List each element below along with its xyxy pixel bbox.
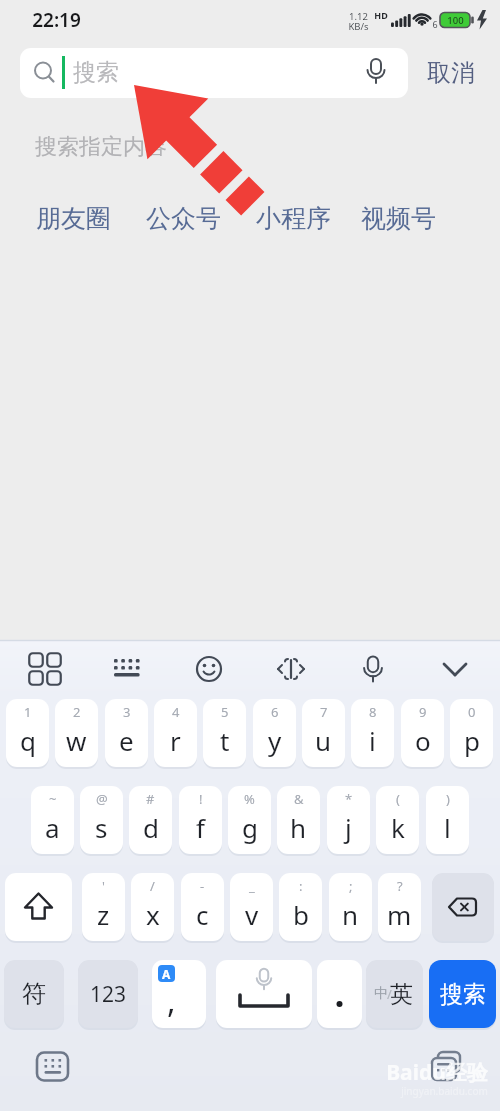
button[interactable]: ! <box>179 786 222 854</box>
button[interactable]: ( <box>376 786 419 854</box>
button[interactable]: # <box>129 786 172 854</box>
staticText: ! <box>199 790 203 808</box>
staticText: y <box>268 723 282 758</box>
staticText: 中 <box>374 985 388 1003</box>
button[interactable]: : <box>279 873 322 941</box>
button[interactable]: ? <box>378 873 421 941</box>
button[interactable] <box>317 960 362 1028</box>
button[interactable]: 符 <box>4 960 64 1028</box>
button[interactable]: 8 <box>351 699 394 767</box>
button[interactable] <box>424 645 486 693</box>
button[interactable]: 朋友圈 <box>35 203 111 233</box>
button[interactable]: 6 <box>253 699 296 767</box>
button[interactable] <box>432 873 494 941</box>
staticText: ' <box>102 877 105 895</box>
button[interactable]: 1 <box>6 699 49 767</box>
staticText: A <box>162 966 171 982</box>
button[interactable]: 2 <box>55 699 98 767</box>
staticText: 8 <box>369 703 377 721</box>
staticText: 2 <box>73 703 81 721</box>
staticText: : <box>299 877 303 895</box>
staticText: s <box>95 810 108 845</box>
button[interactable]: 123 <box>78 960 138 1028</box>
button[interactable] <box>216 960 312 1028</box>
button[interactable]: 4 <box>154 699 197 767</box>
button[interactable]: 7 <box>302 699 345 767</box>
staticText: / <box>150 877 155 895</box>
staticText: 0 <box>468 703 476 721</box>
button[interactable]: @ <box>80 786 123 854</box>
staticText: u <box>315 723 332 758</box>
staticText: # <box>146 790 155 808</box>
button[interactable]: 5 <box>203 699 246 767</box>
staticText: 6 <box>432 18 438 30</box>
staticText: , <box>167 979 176 1023</box>
staticText: 搜索指定内容 <box>35 133 167 161</box>
staticText: - <box>200 877 205 895</box>
button[interactable]: 0 <box>450 699 493 767</box>
button[interactable]: * <box>327 786 370 854</box>
staticText: j <box>345 810 352 845</box>
staticText: _ <box>249 877 255 895</box>
staticText: r <box>170 723 181 758</box>
button[interactable]: 取消 <box>420 52 482 94</box>
staticText: c <box>196 897 209 932</box>
button[interactable]: 搜索 <box>429 960 496 1028</box>
staticText: 符 <box>22 979 46 1009</box>
staticText: 100 <box>447 14 464 27</box>
button[interactable]: ; <box>329 873 372 941</box>
staticText: Baidu经验 <box>386 1058 488 1086</box>
button[interactable] <box>423 1045 468 1089</box>
button[interactable] <box>30 1045 75 1089</box>
staticText: a <box>45 810 60 845</box>
button[interactable] <box>342 645 404 693</box>
staticText: n <box>342 897 359 932</box>
button[interactable]: 视频号 <box>360 203 436 233</box>
button[interactable] <box>5 873 72 941</box>
staticText: ; <box>349 877 353 895</box>
staticText: 英 <box>390 980 413 1009</box>
button[interactable]: / <box>131 873 174 941</box>
staticText: % <box>244 790 255 808</box>
staticText: / <box>387 985 392 1003</box>
staticText: h <box>290 810 307 845</box>
button[interactable]: 公众号 <box>145 203 221 233</box>
staticText: d <box>143 810 159 845</box>
staticText: 朋友圈 <box>36 203 111 233</box>
button[interactable] <box>96 645 158 693</box>
staticText: * <box>345 790 353 808</box>
staticText: ? <box>397 877 403 895</box>
button[interactable]: 小程序 <box>255 203 331 233</box>
button[interactable] <box>260 645 322 693</box>
staticText: k <box>391 810 405 845</box>
button[interactable]: % <box>228 786 271 854</box>
button[interactable]: ~ <box>31 786 74 854</box>
staticText: w <box>66 723 87 758</box>
button[interactable]: ' <box>82 873 125 941</box>
staticText: i <box>369 723 376 758</box>
button[interactable]: A <box>152 960 206 1028</box>
staticText: 5 <box>221 703 229 721</box>
staticText: 6 <box>271 703 279 721</box>
button[interactable]: 3 <box>105 699 148 767</box>
button[interactable] <box>20 48 408 98</box>
button[interactable] <box>14 645 76 693</box>
staticText: 123 <box>90 980 127 1009</box>
staticText: b <box>293 897 309 932</box>
button[interactable]: 中 <box>366 960 423 1028</box>
staticText: o <box>415 723 431 758</box>
staticText: 4 <box>172 703 180 721</box>
button[interactable] <box>178 645 240 693</box>
staticText: 3 <box>123 703 131 721</box>
staticText: 22:19 <box>32 7 81 33</box>
button[interactable]: & <box>277 786 320 854</box>
staticText: ( <box>396 790 400 808</box>
staticText: HD <box>374 9 388 21</box>
button[interactable]: 9 <box>401 699 444 767</box>
button[interactable]: _ <box>230 873 273 941</box>
staticText: & <box>294 790 304 808</box>
staticText: t <box>220 723 230 758</box>
button[interactable]: ) <box>426 786 469 854</box>
button[interactable]: - <box>181 873 224 941</box>
